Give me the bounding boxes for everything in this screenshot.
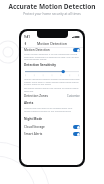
staticText: Cloud Storage (24, 125, 73, 129)
staticText: 9:41 (24, 35, 30, 39)
staticText: Protect your home security at all times (23, 12, 81, 16)
button[interactable]: Toggle (73, 132, 80, 136)
button[interactable]: Cloud Storage (24, 125, 80, 129)
button[interactable]: Smart Alerts (24, 132, 80, 136)
staticText: When motion detection is on the camera w… (24, 53, 80, 60)
staticText: Smart Alerts (24, 132, 73, 136)
staticText: Alerts (24, 101, 34, 105)
staticText: Choose how you want to be notified when … (24, 107, 80, 112)
staticText: Night Mode (24, 117, 43, 121)
staticText: Customize (67, 94, 80, 98)
button[interactable]: Back (21, 40, 29, 47)
button[interactable]: Toggle (73, 125, 80, 129)
button[interactable]: Toggle (73, 48, 80, 52)
button[interactable]: Detection Zones (24, 94, 80, 98)
staticText: Detection Sensitivity (24, 63, 57, 67)
staticText: Motion Detection (24, 48, 73, 52)
staticText: Recording begins within one second of mo… (24, 87, 80, 92)
staticText: Accurate Motion Detection (8, 2, 96, 11)
staticText: Higher sensitivity detects smaller movem… (24, 78, 80, 85)
staticText: Motion Detection (37, 41, 67, 46)
button[interactable]: Motion Detection (24, 48, 80, 52)
staticText: Detection Zones (24, 94, 67, 98)
